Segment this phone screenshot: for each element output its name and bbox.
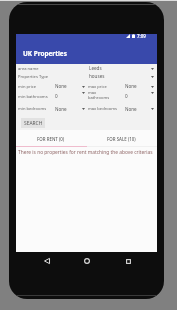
staticText: min price [18,84,37,90]
button[interactable]: Recents [120,253,136,269]
staticText: FOR RENT (0) [37,136,65,142]
staticText: Properties Type [18,74,49,80]
staticText: Leeds [89,65,102,71]
staticText: max bedrooms [88,106,118,112]
button[interactable]: Back [39,253,55,269]
staticText: area name [18,66,39,72]
staticText: max price [88,84,107,90]
staticText: min bathrooms [18,94,48,100]
button[interactable]: FOR SALE (10) [86,129,157,149]
staticText: There is no properties for rent matching… [18,149,153,156]
staticText: max bathrooms [88,90,110,100]
staticText: houses [89,73,105,79]
staticText: min bedrooms [18,106,47,112]
staticText: FOR SALE (10) [107,136,136,142]
staticText: UK Properties [23,49,67,58]
staticText: 7:09 [137,33,146,39]
button[interactable]: Home [79,253,95,269]
staticText: None [125,106,137,112]
staticText: None [55,83,67,89]
staticText: SEARCH [24,120,43,127]
staticText: None [55,106,67,112]
staticText: 0 [125,93,128,99]
staticText: None [125,83,137,89]
button[interactable]: FOR RENT (0) [16,129,86,149]
staticText: 0 [55,93,58,99]
button[interactable]: SEARCH [21,118,45,128]
